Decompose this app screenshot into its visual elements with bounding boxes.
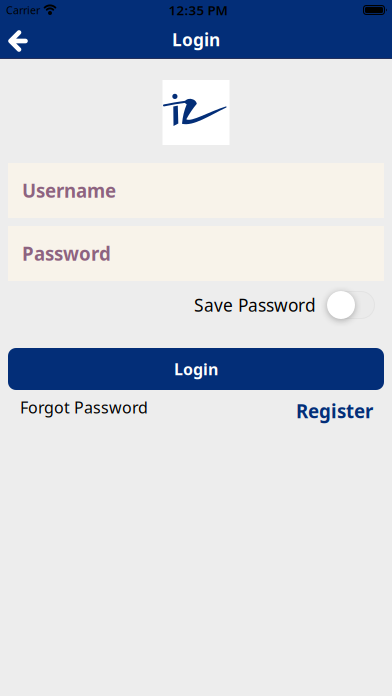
staticText: Save Password — [194, 293, 316, 316]
button[interactable] — [0, 20, 36, 59]
button[interactable] — [327, 291, 375, 319]
button[interactable]: Password — [0, 226, 392, 281]
staticText: Forgot Password — [20, 397, 148, 418]
staticText: Register — [296, 398, 373, 423]
staticText: Login — [172, 28, 220, 51]
button[interactable]: Login — [0, 348, 392, 390]
staticText: Username — [22, 178, 116, 203]
staticText: Login — [174, 358, 218, 380]
staticText: 12:35 PM — [168, 1, 227, 19]
staticText: Carrier — [6, 3, 40, 17]
button[interactable]: Forgot Password — [20, 397, 148, 418]
staticText: Password — [22, 241, 111, 266]
button[interactable]: Username — [0, 163, 392, 218]
button[interactable]: Register — [296, 395, 373, 420]
